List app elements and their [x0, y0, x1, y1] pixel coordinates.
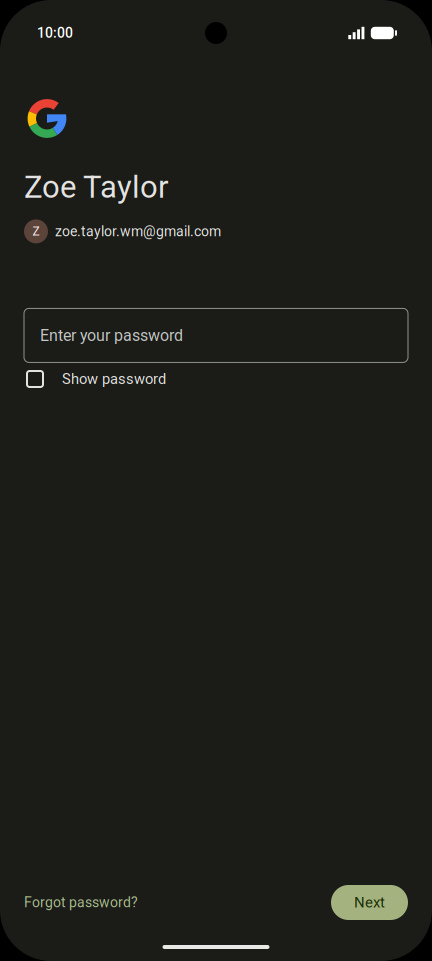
staticText: Forgot password?: [24, 894, 138, 911]
staticText: 10:00: [37, 25, 73, 41]
staticText: Zoe Taylor: [24, 169, 169, 205]
staticText: Next: [354, 894, 385, 911]
button[interactable]: Next: [331, 885, 408, 920]
staticText: Show password: [62, 370, 166, 388]
staticText: Z: [32, 224, 39, 238]
button[interactable]: Forgot password?: [24, 885, 138, 920]
staticText: Enter your password: [40, 326, 183, 345]
staticText: zoe.taylor.wm@gmail.com: [55, 223, 221, 240]
button[interactable]: Show password: [24, 362, 408, 394]
